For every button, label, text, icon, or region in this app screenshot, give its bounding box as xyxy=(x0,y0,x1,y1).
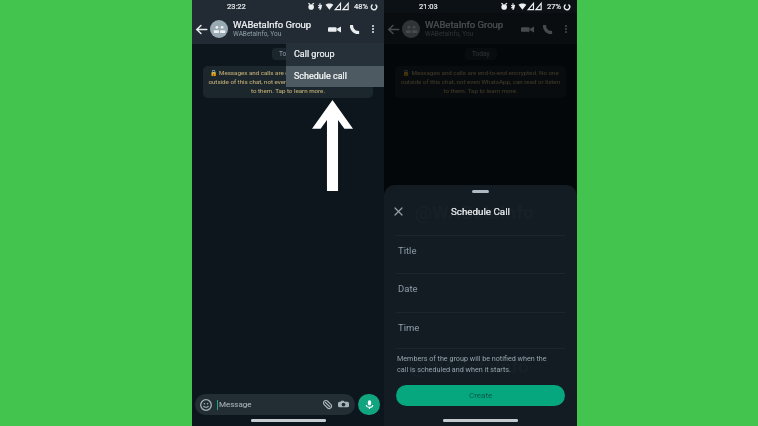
button[interactable]: Voice call xyxy=(344,19,364,39)
staticText: Schedule call xyxy=(294,71,347,82)
button[interactable]: Back xyxy=(386,22,400,36)
button[interactable]: Close xyxy=(388,201,408,221)
staticText: 23:22 xyxy=(227,2,246,11)
staticText: Schedule Call xyxy=(451,206,510,217)
button[interactable]: Call group xyxy=(286,43,384,66)
staticText: Members of the group will be notified wh… xyxy=(397,354,559,374)
button[interactable]: Create xyxy=(396,385,565,406)
staticText: @WABetaInfo xyxy=(410,355,529,377)
button[interactable]: Voice message xyxy=(358,394,380,415)
staticText: Call group xyxy=(294,49,335,60)
staticText: Message xyxy=(219,400,252,409)
staticText: WABetaInfo, You xyxy=(233,30,282,38)
button[interactable]: Voice call xyxy=(537,19,557,39)
staticText: Today xyxy=(279,50,297,58)
staticText: 27% xyxy=(547,2,561,11)
button[interactable]: More options xyxy=(364,20,381,37)
button[interactable]: Video call xyxy=(324,19,344,39)
staticText: WABetaInfo, You xyxy=(425,30,474,38)
staticText: 🔒 Messages and calls are end-to-end encr… xyxy=(208,69,368,95)
staticText: Create xyxy=(469,391,493,400)
button[interactable]: Schedule call xyxy=(286,66,384,87)
staticText: 🔒 Messages and calls are end-to-end encr… xyxy=(400,69,561,95)
staticText: 21:03 xyxy=(419,2,438,11)
button[interactable]: Time xyxy=(384,313,577,350)
button[interactable]: Date xyxy=(384,274,577,311)
button[interactable]: Video call xyxy=(517,19,537,39)
staticText: WABetaInfo Group xyxy=(425,19,504,30)
button[interactable]: More options xyxy=(557,20,574,37)
staticText: Date xyxy=(398,283,418,294)
button[interactable]: Back xyxy=(194,22,208,36)
staticText: Time xyxy=(398,322,420,333)
button[interactable]: Message xyxy=(195,394,355,415)
staticText: Today xyxy=(472,50,490,58)
staticText: Title xyxy=(398,245,417,256)
staticText: @WABetaInfo xyxy=(415,201,534,223)
button[interactable]: Title xyxy=(384,236,577,273)
staticText: WABetaInfo Group xyxy=(233,19,312,30)
staticText: 48% xyxy=(354,2,368,11)
